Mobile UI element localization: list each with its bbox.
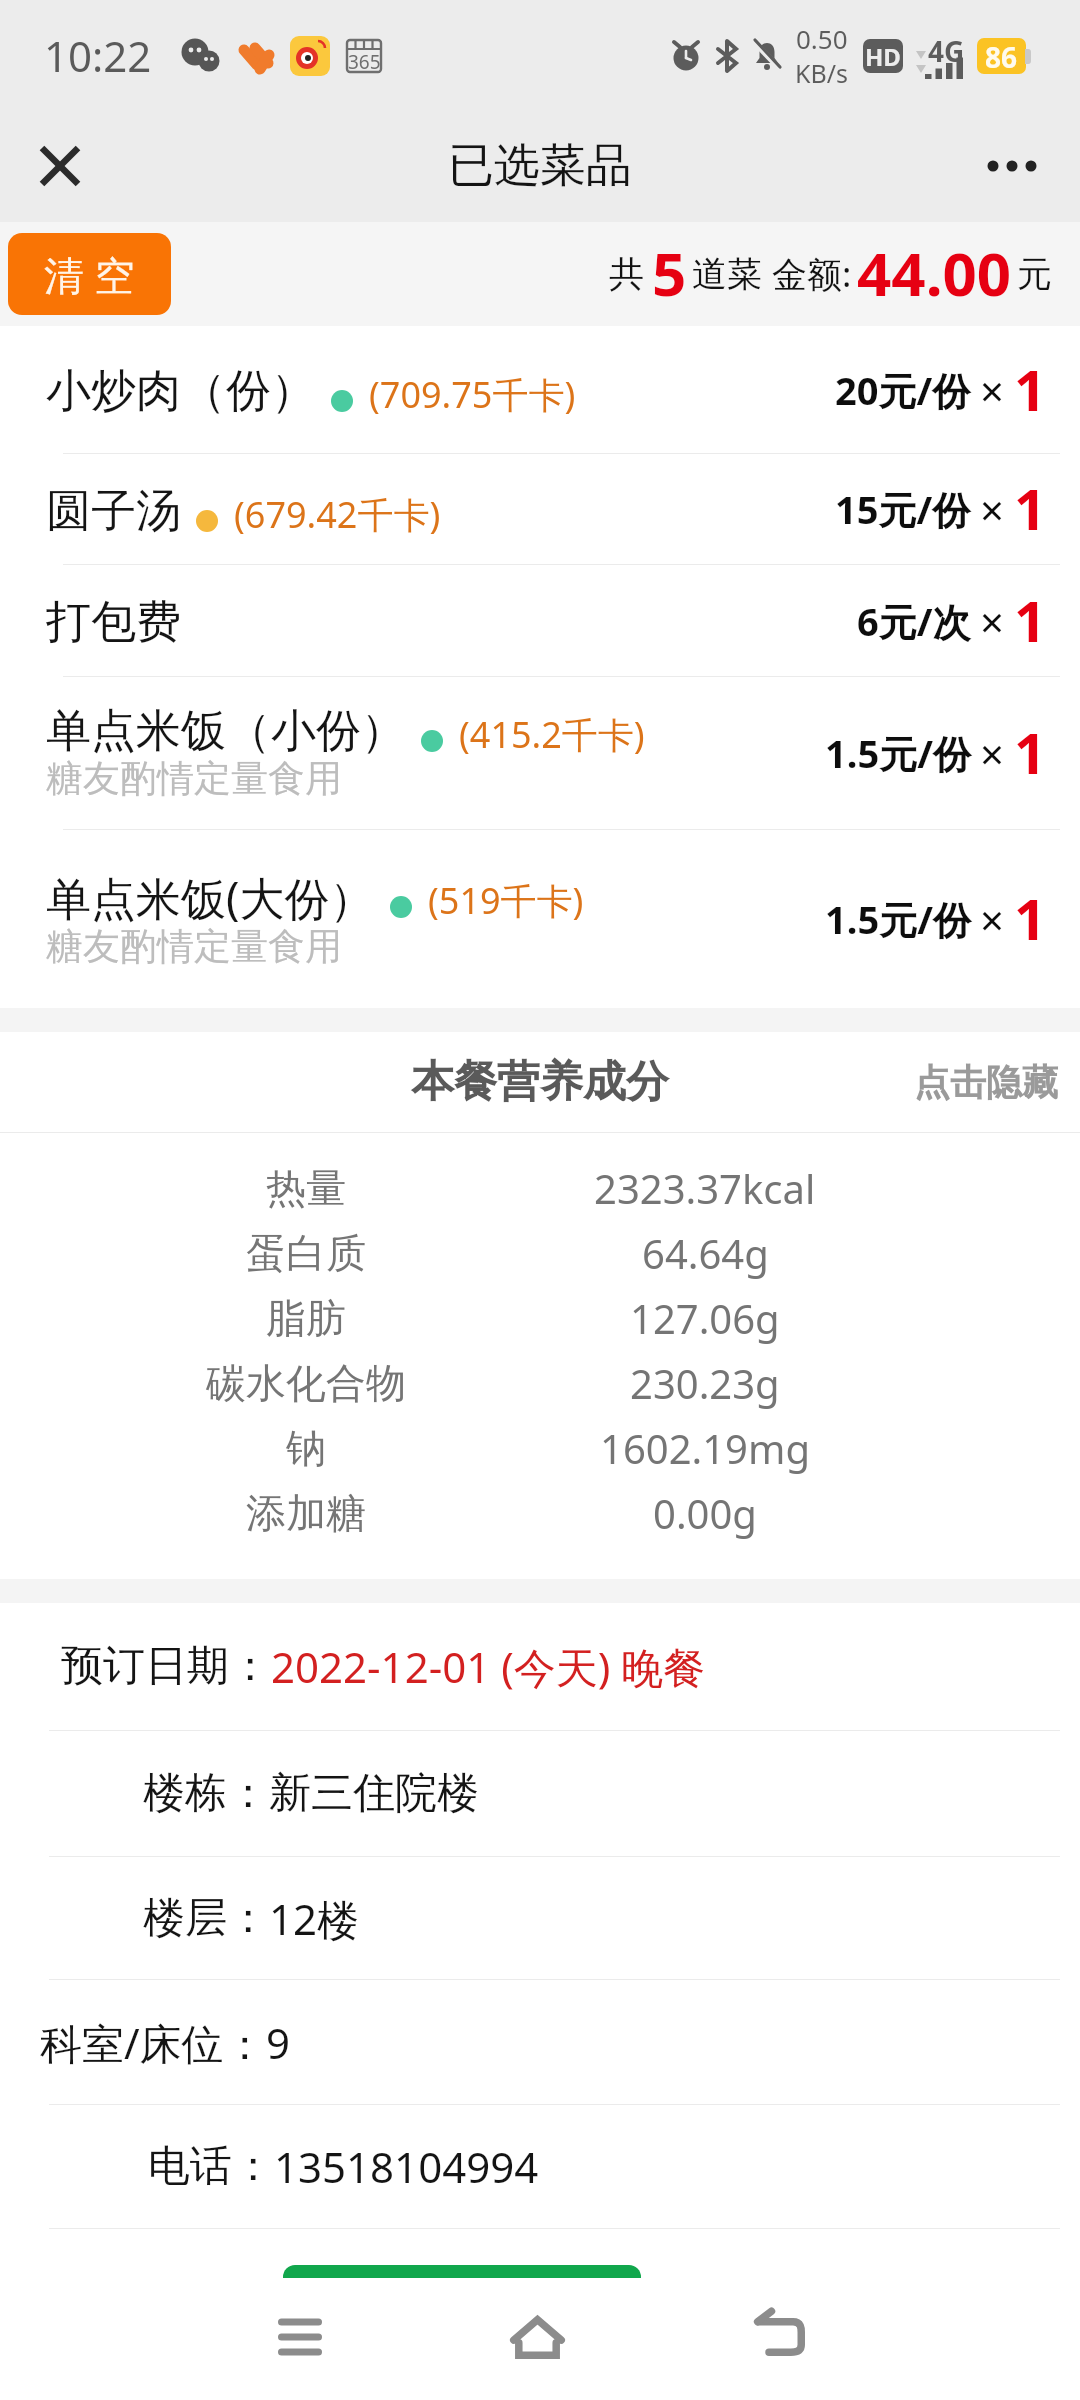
staticText: (679.42千卡) xyxy=(234,490,441,539)
staticText: 5 xyxy=(652,232,687,314)
button[interactable]: 单点米饭（小份） xyxy=(0,677,1080,829)
staticText: 1 xyxy=(1014,714,1047,790)
staticText: 2323.37kcal xyxy=(594,1161,816,1215)
staticText: 楼层： xyxy=(143,1892,269,1945)
staticText: 1 xyxy=(1014,582,1047,658)
staticText: × xyxy=(980,725,1005,782)
staticText: 86 xyxy=(985,38,1018,74)
staticText: 本餐营养成分 xyxy=(411,1055,669,1109)
staticText: 13518104994 xyxy=(274,2138,539,2195)
staticText: 楼栋： xyxy=(143,1767,269,1820)
staticText: 单点米饭（小份） xyxy=(46,703,406,760)
staticText: 脂肪 xyxy=(266,1293,346,1343)
staticText: 电话： xyxy=(148,2140,274,2193)
staticText: 预订日期： xyxy=(61,1640,271,1693)
staticText: × xyxy=(980,481,1005,538)
staticText: HD xyxy=(865,40,901,73)
staticText: 打包费 xyxy=(46,594,181,651)
staticText: 0.00g xyxy=(653,1486,757,1540)
staticText: 蛋白质 xyxy=(246,1228,366,1278)
staticText: 1.5元/份 xyxy=(825,893,971,945)
staticText: 20元/份 xyxy=(835,364,971,416)
staticText: 9 xyxy=(266,2014,291,2071)
staticText: 1.5元/份 xyxy=(825,727,971,779)
staticText: 12楼 xyxy=(269,1890,360,1947)
staticText: 0.50 xyxy=(796,21,848,56)
button[interactable]: 清 空 xyxy=(8,233,171,315)
staticText: 清 空 xyxy=(44,247,135,302)
staticText: 圆子汤 xyxy=(46,483,181,540)
staticText: KB/s xyxy=(795,56,849,90)
staticText: 金额: xyxy=(772,250,852,298)
button[interactable]: 楼层： xyxy=(0,1857,1080,1979)
button[interactable]: 电话： xyxy=(0,2105,1080,2228)
button[interactable]: 点击隐藏 xyxy=(914,1060,1058,1105)
staticText: 2022-12-01 (今天) 晚餐 xyxy=(271,1638,706,1695)
button[interactable]: 小炒肉（份） xyxy=(0,326,1080,453)
staticText: × xyxy=(980,891,1005,948)
staticText: 元 xyxy=(1017,252,1052,296)
button[interactable]: More options xyxy=(970,124,1054,208)
staticText: 新三住院楼 xyxy=(269,1767,479,1820)
staticText: 单点米饭(大份） xyxy=(46,867,375,928)
button[interactable]: Home xyxy=(489,2289,585,2385)
button[interactable]: Recents xyxy=(252,2289,348,2385)
staticText: 小炒肉（份） xyxy=(46,363,316,420)
staticText: 科室/床位： xyxy=(40,2014,266,2071)
staticText: 共 xyxy=(609,252,644,296)
staticText: 6元/次 xyxy=(857,595,971,647)
staticText: 230.23g xyxy=(630,1356,780,1410)
staticText: 钠 xyxy=(286,1423,326,1473)
staticText: (709.75千卡) xyxy=(369,370,576,419)
staticText: 热量 xyxy=(266,1163,346,1213)
button[interactable]: 单点米饭(大份） xyxy=(0,830,1080,1008)
button[interactable]: 科室/床位： xyxy=(0,1980,1080,2104)
staticText: 添加糖 xyxy=(246,1488,366,1538)
staticText: 4G xyxy=(928,32,965,70)
staticText: 10:22 xyxy=(44,27,152,84)
staticText: 127.06g xyxy=(630,1291,780,1345)
button[interactable] xyxy=(283,2265,641,2278)
staticText: (415.2千卡) xyxy=(459,710,645,759)
staticText: 1 xyxy=(1014,470,1047,546)
button[interactable]: Close xyxy=(18,124,102,208)
staticText: 1 xyxy=(1014,351,1047,427)
staticText: (519千卡) xyxy=(428,876,584,925)
button[interactable]: 圆子汤 xyxy=(0,454,1080,564)
button[interactable]: 预订日期： xyxy=(0,1603,1080,1730)
staticText: 糖友酌情定量食用 xyxy=(46,755,342,802)
staticText: 365 xyxy=(348,49,381,75)
staticText: 44.00 xyxy=(857,232,1012,314)
staticText: 糖友酌情定量食用 xyxy=(46,923,342,970)
button[interactable]: Back xyxy=(732,2289,828,2385)
staticText: × xyxy=(980,362,1005,419)
staticText: 已选菜品 xyxy=(448,137,632,195)
button[interactable]: 打包费 xyxy=(0,565,1080,676)
staticText: 15元/份 xyxy=(835,483,971,535)
staticText: 碳水化合物 xyxy=(206,1358,406,1408)
staticText: 64.64g xyxy=(642,1226,769,1280)
staticText: 道菜 xyxy=(692,252,762,296)
staticText: × xyxy=(980,593,1005,650)
staticText: 1 xyxy=(1014,880,1047,956)
staticText: 1602.19mg xyxy=(600,1421,810,1475)
button[interactable]: 楼栋： xyxy=(0,1731,1080,1856)
